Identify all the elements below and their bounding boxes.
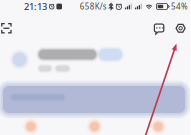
button[interactable] — [0, 0, 190, 80]
button[interactable]: Discover — [63, 109, 126, 135]
button[interactable]: Profile — [126, 109, 190, 135]
button[interactable] — [0, 80, 190, 118]
button[interactable]: Messages — [149, 13, 169, 37]
button[interactable]: Settings — [169, 13, 190, 37]
staticText: 658K/s — [80, 1, 107, 12]
staticText: 54% — [171, 1, 188, 12]
button[interactable]: Scan — [0, 13, 20, 37]
button[interactable]: Home — [0, 109, 63, 135]
staticText: 21:13 — [24, 0, 47, 13]
